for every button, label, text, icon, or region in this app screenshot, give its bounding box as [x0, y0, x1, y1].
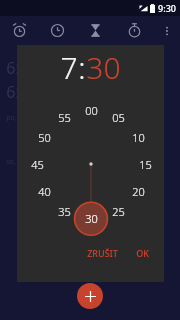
button[interactable]: More options: [154, 16, 180, 45]
staticText: OK: [136, 247, 149, 259]
staticText: 6:30: [6, 57, 38, 79]
button[interactable]: 10: [128, 127, 148, 147]
staticText: 05: [112, 110, 125, 125]
button[interactable]: 30: [86, 47, 121, 88]
button[interactable]: 20: [128, 181, 148, 201]
button[interactable]: 05: [108, 107, 128, 127]
button[interactable]: OK: [129, 243, 156, 263]
staticText: 6:00: [6, 81, 38, 103]
button[interactable]: 35: [54, 201, 74, 221]
staticText: 20: [132, 184, 145, 199]
button[interactable]: 30: [81, 208, 101, 228]
button[interactable]: ZRUŠIT: [80, 243, 125, 263]
button[interactable]: Timer: [76, 16, 115, 45]
staticText: 30: [86, 47, 121, 88]
staticText: so, ne: [6, 157, 26, 167]
button[interactable]: 00: [81, 100, 101, 120]
button[interactable]: Stopwatch: [115, 16, 154, 45]
staticText: po, út, st: [6, 113, 35, 123]
staticText: ZRUŠIT: [87, 247, 118, 259]
staticText: 25: [112, 204, 125, 219]
staticText: 30: [85, 211, 98, 226]
button[interactable]: 55: [54, 107, 74, 127]
button[interactable]: 45: [27, 154, 47, 174]
button[interactable]: Add alarm: [77, 283, 103, 309]
button[interactable]: 15: [135, 154, 155, 174]
button[interactable]: 25: [108, 201, 128, 221]
staticText: 10: [132, 130, 145, 145]
button[interactable]: Clock: [38, 16, 76, 45]
button[interactable]: 7: [60, 47, 78, 88]
button[interactable]: Alarm: [0, 16, 38, 45]
staticText: 50: [38, 130, 51, 145]
staticText: 00: [85, 103, 98, 118]
staticText: 9:30: [158, 2, 176, 14]
staticText: 15: [139, 157, 152, 172]
button[interactable]: 50: [34, 127, 54, 147]
staticText: 7: [60, 47, 78, 88]
button[interactable]: 40: [34, 181, 54, 201]
staticText: 45: [31, 157, 44, 172]
staticText: 55: [58, 110, 71, 125]
staticText: :: [78, 47, 86, 88]
staticText: 40: [38, 184, 51, 199]
staticText: 35: [58, 204, 71, 219]
